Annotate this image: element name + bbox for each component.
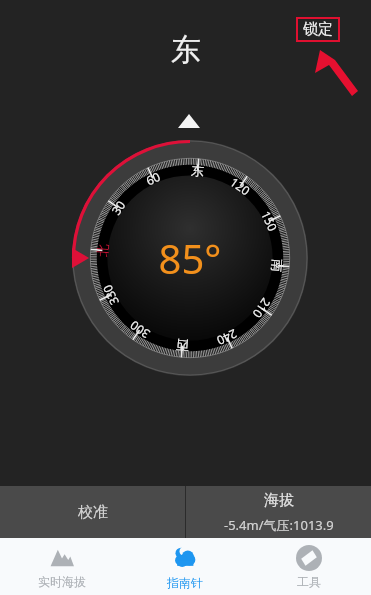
staticText: 锁定 [303,20,333,39]
button[interactable]: 实时海拔 [0,538,123,595]
button[interactable]: 指南针刻度盘 [72,140,308,376]
staticText: -5.4m/气压:1013.9 [224,516,334,534]
staticText: 实时海拔 [38,574,86,589]
button[interactable]: 锁定 [296,17,340,42]
button[interactable]: 校准 [0,486,185,538]
button[interactable]: 指南针 [123,538,247,595]
other: 实时海拔 [49,545,75,571]
other: 指南针 [171,544,199,572]
button[interactable]: 工具 [247,538,371,595]
staticText: 工具 [297,574,321,589]
other: 工具 [296,545,322,571]
staticText: 校准 [78,503,108,522]
staticText: 指南针 [167,575,203,590]
button[interactable]: 海拔 [186,486,371,538]
staticText: 海拔 [264,491,294,510]
staticText: 东 [171,31,201,69]
